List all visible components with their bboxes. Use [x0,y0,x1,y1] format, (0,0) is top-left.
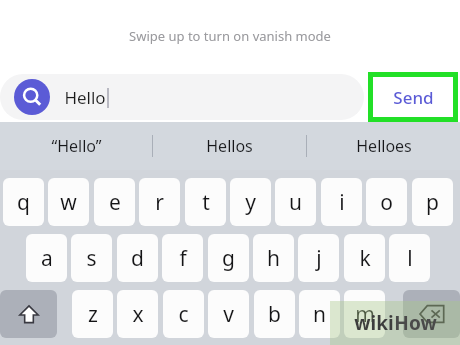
button[interactable]: i [321,178,362,226]
staticText: j [316,244,322,273]
button[interactable]: Backspace [403,290,460,338]
button[interactable]: z [72,290,113,338]
button[interactable]: Search [14,79,50,115]
button[interactable]: q [3,178,44,226]
staticText: z [88,300,98,329]
staticText: g [222,244,235,273]
staticText: a [41,244,53,273]
button[interactable]: k [344,234,385,282]
button[interactable]: Shift [0,290,57,338]
staticText: Hello [64,86,106,109]
staticText: k [359,244,371,273]
button[interactable]: x [117,290,158,338]
staticText: f [179,244,187,273]
button[interactable]: f [162,234,203,282]
button[interactable]: l [389,234,430,282]
staticText: How [394,310,437,336]
button[interactable]: w [48,178,89,226]
button[interactable]: g [208,234,249,282]
button[interactable]: y [230,178,271,226]
button[interactable]: m [344,290,385,338]
button[interactable]: j [298,234,339,282]
staticText: x [132,300,144,329]
button[interactable]: h [253,234,294,282]
staticText: m [355,300,375,329]
button[interactable]: Send [373,77,453,117]
button[interactable]: d [117,234,158,282]
staticText: u [289,188,302,217]
button[interactable]: c [163,290,204,338]
staticText: v [223,300,234,329]
button[interactable]: n [299,290,340,338]
staticText: d [131,244,144,273]
button[interactable]: t [185,178,226,226]
staticText: p [426,188,439,217]
button[interactable]: u [275,178,316,226]
button[interactable]: e [94,178,135,226]
staticText: s [86,244,97,273]
staticText: l [407,244,413,273]
staticText: n [313,300,326,329]
button[interactable]: “Hello” [0,122,152,170]
staticText: b [268,300,281,329]
staticText: h [267,244,280,273]
staticText: Hellos [206,135,253,157]
staticText: Send [393,86,434,109]
button[interactable]: o [366,178,407,226]
staticText: i [339,188,345,217]
button[interactable]: s [71,234,112,282]
staticText: c [178,300,189,329]
button[interactable]: v [208,290,249,338]
staticText: Swipe up to turn on vanish mode [129,27,331,45]
button[interactable]: Helloes [307,122,460,170]
staticText: wiki [354,310,394,336]
staticText: r [155,188,164,217]
button[interactable]: a [26,234,67,282]
button[interactable]: r [139,178,180,226]
button[interactable]: p [412,178,453,226]
button[interactable]: b [254,290,295,338]
button[interactable]: Hellos [153,122,306,170]
staticText: o [380,188,393,217]
staticText: e [109,188,121,217]
staticText: w [60,188,77,217]
staticText: Helloes [356,135,412,157]
staticText: q [17,188,30,217]
staticText: t [202,188,210,217]
staticText: “Hello” [51,135,102,157]
staticText: y [245,188,256,217]
